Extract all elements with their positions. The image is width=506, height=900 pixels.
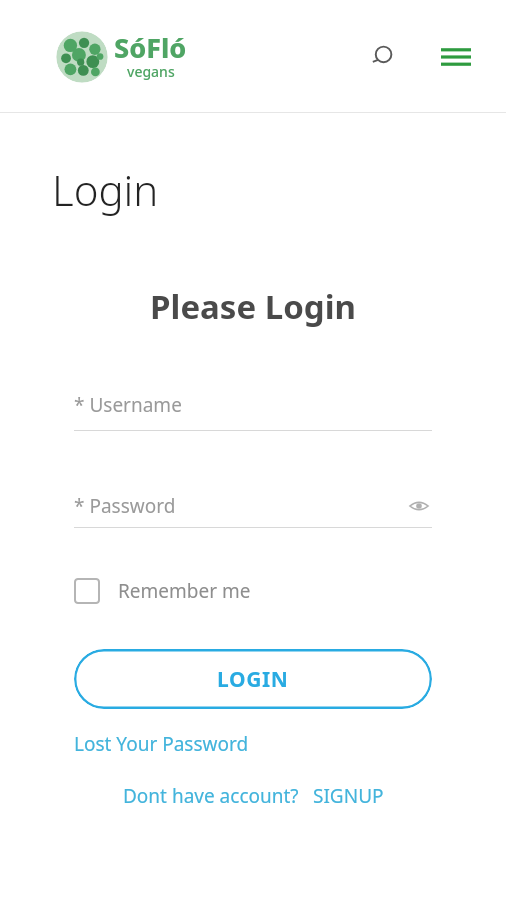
button[interactable]: Search — [360, 35, 404, 79]
staticText: * Password — [74, 493, 176, 519]
button[interactable]: * Password — [74, 493, 432, 519]
button[interactable]: LOGIN — [74, 649, 432, 709]
staticText: LOGIN — [217, 665, 289, 694]
button[interactable]: Menu — [434, 35, 478, 79]
staticText: Lost Your Password — [74, 731, 249, 757]
staticText: Dont have account? — [123, 783, 299, 809]
staticText: * Username — [74, 392, 182, 418]
staticText: SóFló — [114, 29, 187, 66]
button[interactable]: SoFlo Vegans home — [54, 29, 187, 85]
button[interactable]: Lost Your Password — [74, 731, 249, 757]
button[interactable]: * Username — [74, 392, 432, 431]
staticText: vegans — [127, 62, 175, 81]
staticText: Remember me — [118, 578, 251, 604]
staticText: Login — [52, 161, 159, 218]
staticText: SIGNUP — [313, 783, 384, 809]
button[interactable]: SIGNUP — [313, 783, 384, 809]
button[interactable]: Remember me — [74, 578, 251, 604]
staticText: Please Login — [150, 284, 356, 329]
button[interactable]: Show password — [406, 493, 432, 519]
